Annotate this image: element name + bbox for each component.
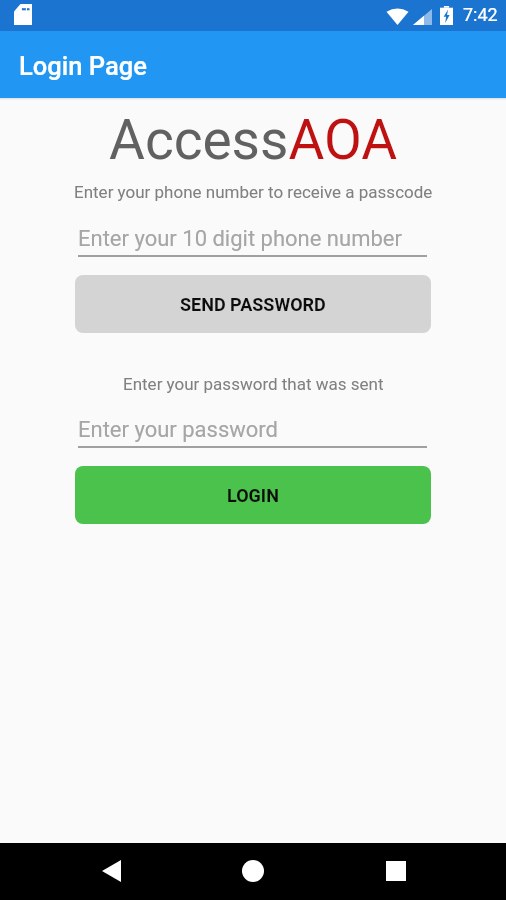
staticText: SEND PASSWORD bbox=[180, 294, 326, 315]
button[interactable]: Enter your password bbox=[78, 413, 427, 450]
staticText: 7:42 bbox=[463, 4, 498, 25]
staticText: Enter your 10 digit phone number bbox=[78, 226, 402, 252]
staticText: Login Page bbox=[19, 51, 147, 81]
button[interactable]: Home bbox=[224, 842, 282, 899]
staticText: AccessAOA bbox=[109, 108, 398, 172]
button[interactable]: Back bbox=[82, 842, 140, 899]
staticText: Enter your password that was sent bbox=[123, 374, 384, 394]
button[interactable]: Recent apps bbox=[367, 842, 425, 899]
staticText: Enter your phone number to receive a pas… bbox=[74, 182, 433, 202]
staticText: LOGIN bbox=[227, 485, 279, 506]
button[interactable]: LOGIN bbox=[75, 466, 431, 524]
button[interactable]: Enter your 10 digit phone number bbox=[78, 222, 427, 259]
staticText: Enter your password bbox=[78, 417, 279, 443]
button[interactable]: SEND PASSWORD bbox=[75, 275, 431, 333]
